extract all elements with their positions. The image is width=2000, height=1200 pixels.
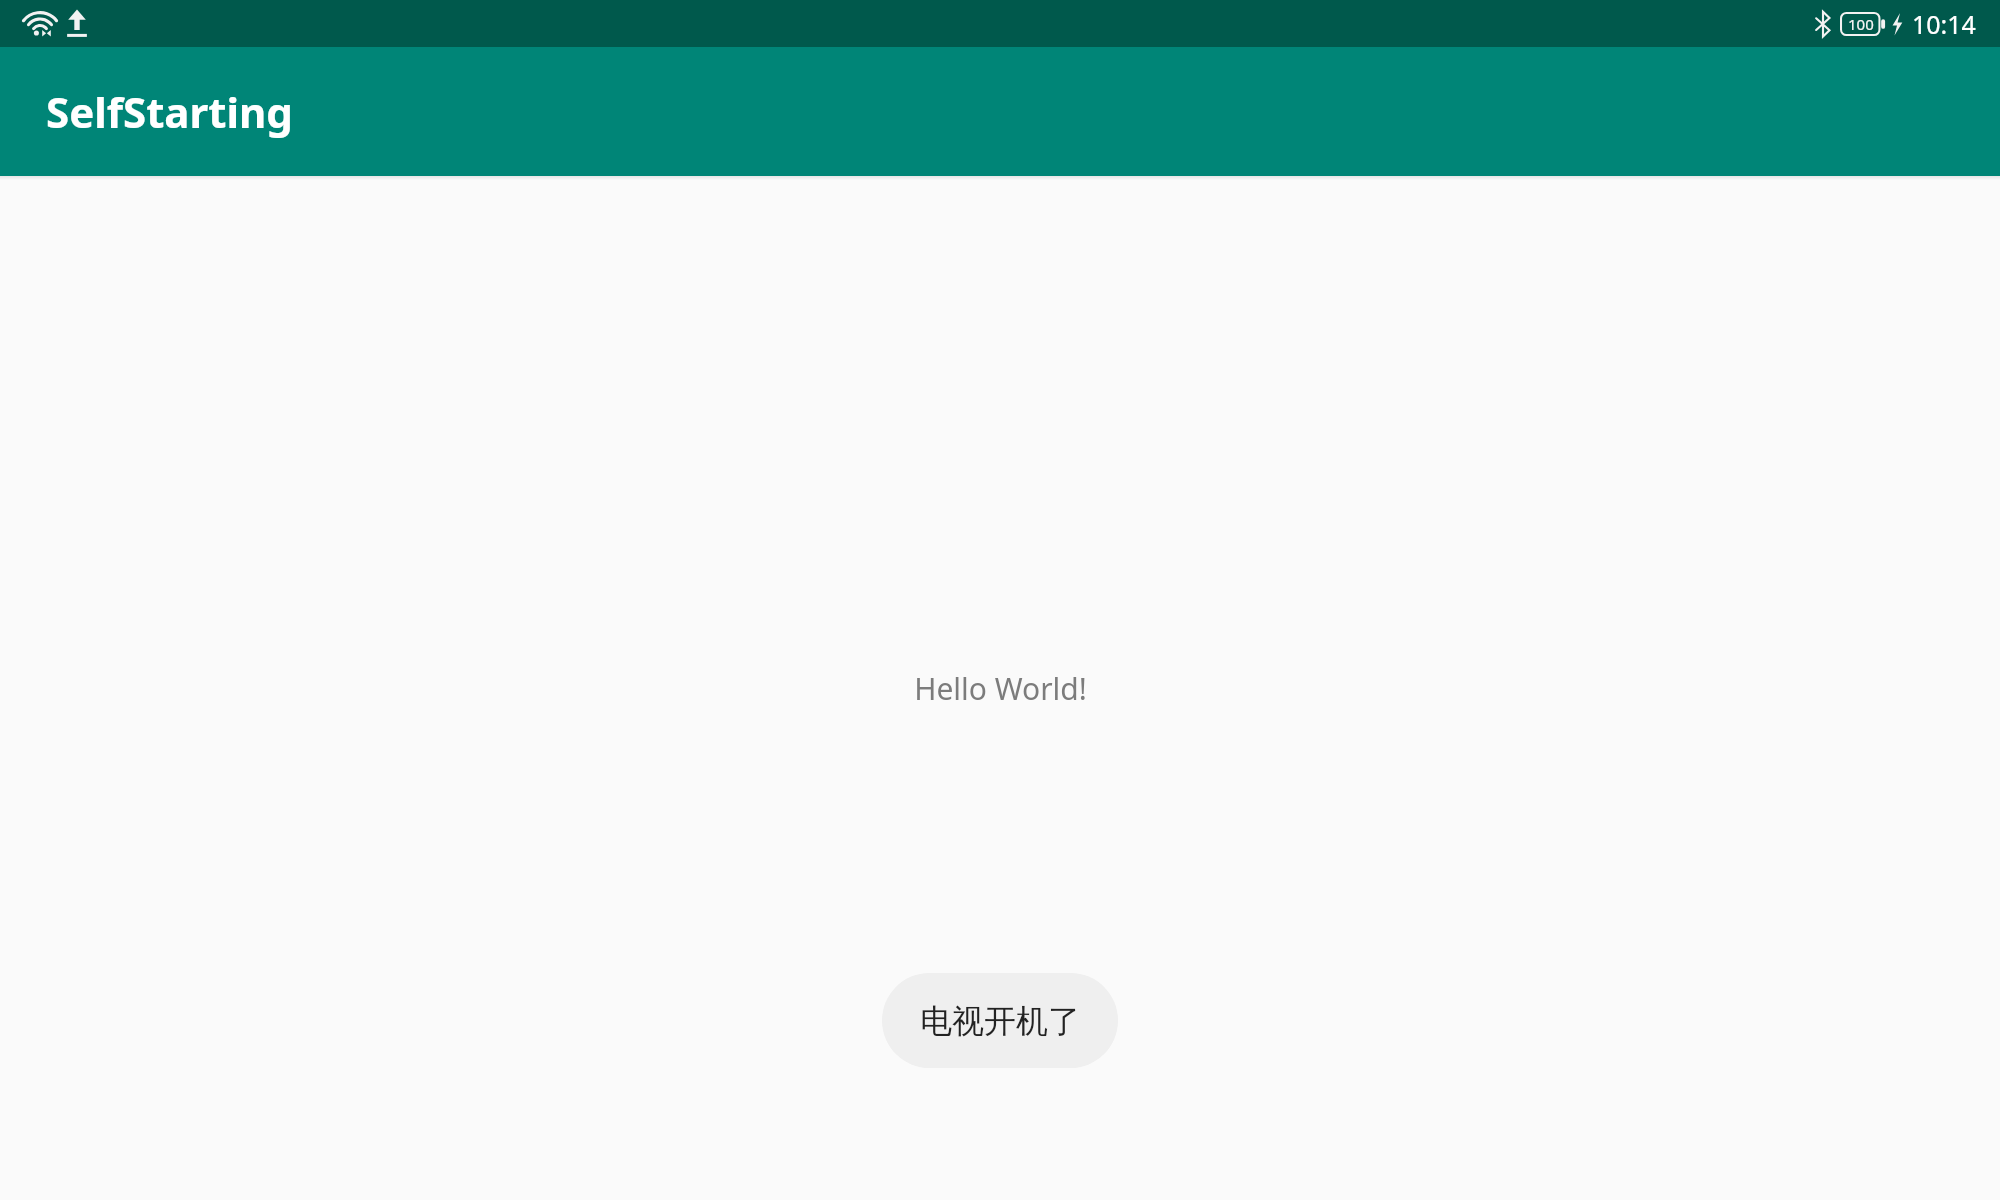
staticText: SelfStarting xyxy=(46,83,293,140)
staticText: Hello World! xyxy=(914,668,1087,709)
button[interactable]: 电视开机了 xyxy=(882,973,1118,1068)
staticText: 10:14 xyxy=(1912,7,1976,41)
staticText: 电视开机了 xyxy=(920,1001,1080,1041)
staticText: 100 xyxy=(1848,14,1874,34)
